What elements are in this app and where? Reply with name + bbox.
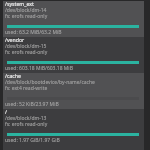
staticText: /cache xyxy=(5,72,21,79)
staticText: /dev/block/dm-13 xyxy=(5,115,47,122)
staticText: fs: ext4 read-write xyxy=(5,85,48,92)
staticText: used: 1.97 GiB/1.97 GiB xyxy=(5,137,60,144)
staticText: used: 603.18 MiB/603.18 MiB xyxy=(5,65,73,72)
staticText: /dev/block/dm-15 xyxy=(5,43,47,50)
button[interactable]: / xyxy=(3,109,144,150)
staticText: /dev/block/dm-14 xyxy=(5,7,47,14)
staticText: /system_ext xyxy=(5,0,34,7)
button[interactable]: /cache xyxy=(3,73,144,109)
staticText: /vendor xyxy=(5,36,25,43)
staticText: fs: erofs read-only xyxy=(5,13,48,20)
staticText: used: 52 KiB/23.97 MiB xyxy=(5,101,59,108)
staticText: fs: erofs read-only xyxy=(5,49,48,56)
staticText: used: 63.2 MiB/63.2 MiB xyxy=(5,29,62,36)
staticText: /dev/block/bootdevice/by-name/cache xyxy=(5,79,95,86)
staticText: / xyxy=(5,108,7,115)
button[interactable]: /vendor xyxy=(3,37,144,73)
staticText: fs: erofs read-only xyxy=(5,121,48,128)
button[interactable]: /system_ext xyxy=(3,1,144,37)
